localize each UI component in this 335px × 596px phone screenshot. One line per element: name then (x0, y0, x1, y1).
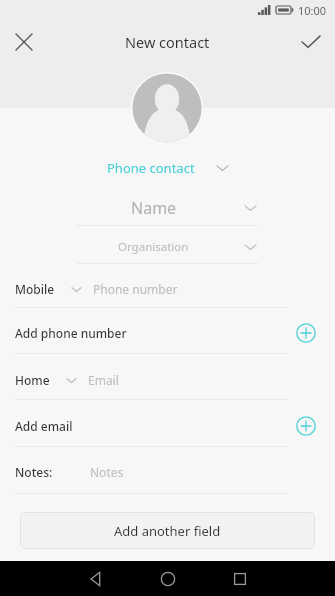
staticText: Phone contact (107, 159, 195, 177)
staticText: Add email (15, 418, 73, 434)
button[interactable]: Organisation (77, 234, 258, 260)
button[interactable]: Recents (231, 570, 249, 588)
button[interactable]: Add (296, 323, 316, 343)
button[interactable]: Name (77, 193, 258, 223)
button[interactable]: Notes: (15, 459, 288, 485)
staticText: Mobile (15, 281, 55, 297)
button[interactable]: Close (6, 24, 42, 60)
staticText: Email (88, 372, 119, 388)
staticText: Add another field (114, 522, 221, 540)
staticText: Notes (90, 464, 124, 480)
button[interactable]: Add (296, 416, 316, 436)
staticText: New contact (125, 32, 210, 52)
button[interactable]: Save (293, 24, 329, 60)
button[interactable]: Add email (15, 411, 315, 441)
button[interactable]: Phone contact (0, 156, 335, 180)
staticText: 10:00 (298, 3, 327, 18)
button[interactable]: Home (159, 570, 177, 588)
staticText: Notes: (15, 464, 53, 480)
button[interactable]: Mobile (15, 276, 288, 302)
button[interactable]: Add another field (20, 512, 315, 549)
button[interactable]: Back (86, 570, 104, 588)
staticText: Home (15, 372, 50, 388)
staticText: Organisation (118, 239, 189, 255)
staticText: Phone number (93, 281, 178, 297)
staticText: Name (131, 197, 177, 219)
staticText: Add phone number (15, 325, 127, 341)
button[interactable]: Home (15, 367, 288, 393)
button[interactable]: Add phone number (15, 318, 315, 348)
